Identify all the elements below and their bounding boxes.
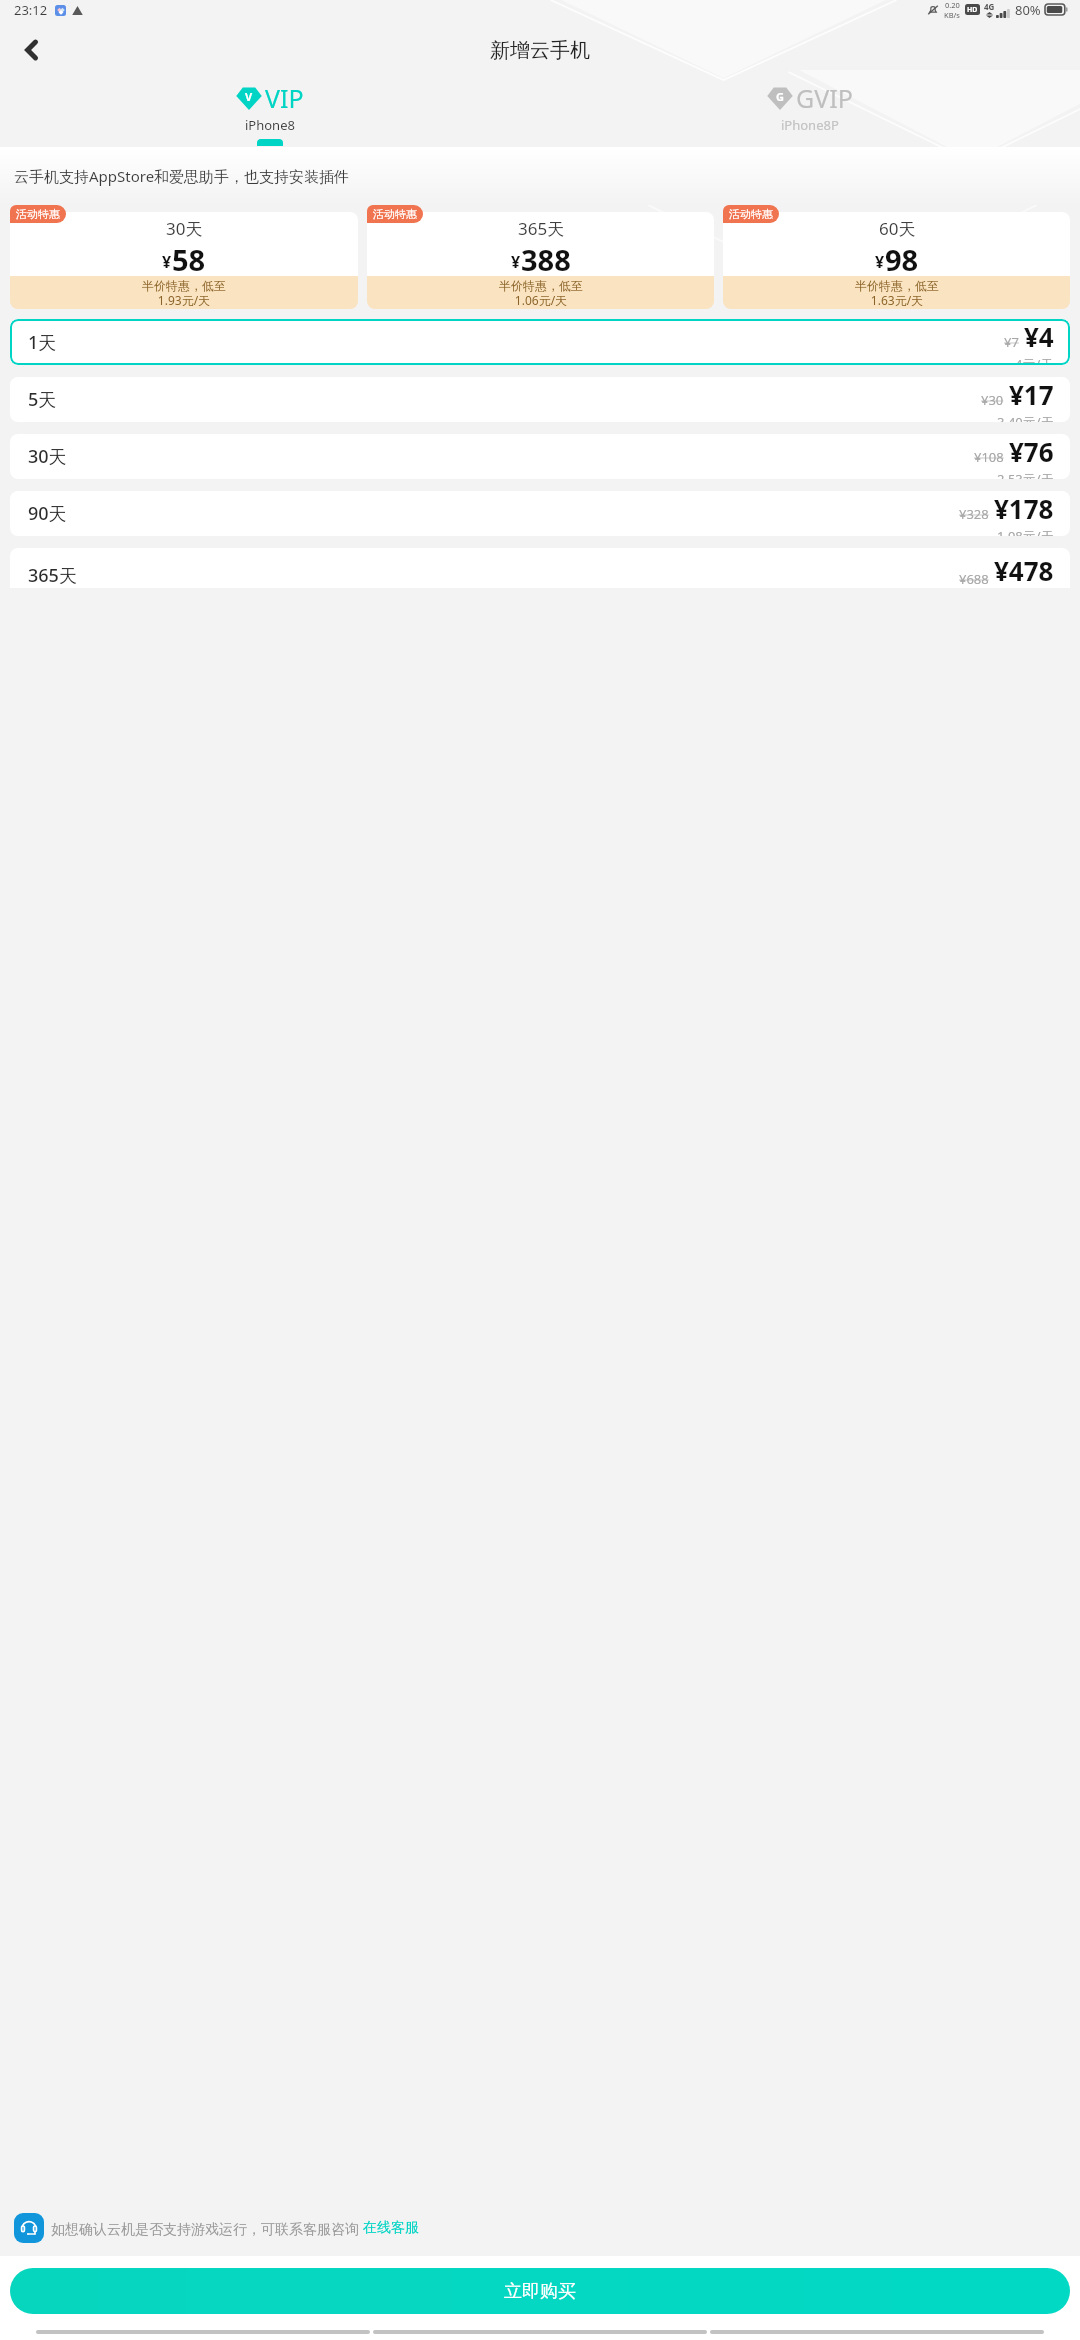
staticText: 30天 bbox=[28, 444, 67, 469]
staticText: G bbox=[776, 89, 784, 104]
button[interactable]: G bbox=[540, 81, 1080, 147]
staticText: 60天 bbox=[879, 217, 916, 240]
staticText: 365天 bbox=[518, 217, 565, 240]
staticText: ¥17 bbox=[1009, 377, 1054, 412]
staticText: 5天 bbox=[28, 387, 57, 412]
staticText: 云手机支持AppStore和爱思助手，也支持安装插件 bbox=[14, 166, 350, 186]
staticText: ¥ bbox=[511, 251, 521, 273]
button[interactable]: 5天 bbox=[10, 377, 1070, 422]
staticText: 80% bbox=[1015, 1, 1041, 19]
staticText: ¥76 bbox=[1009, 434, 1054, 469]
staticText: 365天 bbox=[28, 563, 77, 588]
button[interactable]: 365天 bbox=[10, 548, 1070, 588]
staticText: 如想确认云机是否支持游戏运行，可联系客服咨询 bbox=[51, 2219, 363, 2238]
staticText: 0.20 bbox=[945, 0, 960, 10]
staticText: 388 bbox=[521, 240, 571, 276]
staticText: ¥478 bbox=[994, 553, 1054, 588]
staticText: 1天 bbox=[28, 330, 57, 355]
staticText: ¥108 bbox=[974, 448, 1004, 466]
staticText: 90天 bbox=[28, 501, 67, 526]
staticText: ¥688 bbox=[959, 570, 989, 588]
staticText: 98 bbox=[885, 240, 919, 276]
button[interactable]: V bbox=[0, 81, 540, 147]
staticText: 1.98元/天 bbox=[997, 527, 1054, 536]
button[interactable]: 1天 bbox=[10, 319, 1070, 365]
staticText: 半价特惠，低至 1.63元/天 bbox=[855, 278, 939, 308]
staticText: 58 bbox=[172, 240, 206, 276]
staticText: iPhone8 bbox=[245, 116, 295, 134]
staticText: 在线客服 bbox=[363, 2219, 419, 2237]
staticText: 半价特惠，低至 1.06元/天 bbox=[499, 278, 583, 308]
button[interactable]: 60天 bbox=[723, 205, 1070, 309]
staticText: 活动特惠 bbox=[729, 207, 773, 221]
button[interactable]: 立即购买 bbox=[10, 2268, 1070, 2314]
staticText: 半价特惠，低至 1.93元/天 bbox=[142, 278, 226, 308]
staticText: 4元/天 bbox=[1015, 355, 1054, 365]
staticText: ¥7 bbox=[1004, 333, 1019, 351]
staticText: ¥178 bbox=[994, 491, 1054, 526]
staticText: ¥30 bbox=[981, 391, 1004, 409]
staticText: iPhone8P bbox=[781, 116, 839, 134]
staticText: ¥ bbox=[162, 251, 172, 273]
staticText: 4G bbox=[984, 1, 995, 12]
staticText: V bbox=[245, 89, 253, 104]
staticText: 30天 bbox=[166, 217, 203, 240]
staticText: ¥4 bbox=[1024, 319, 1054, 354]
staticText: KB/s bbox=[944, 10, 960, 19]
staticText: ¥328 bbox=[959, 505, 989, 523]
button[interactable]: 如想确认云机是否支持游戏运行，可联系客服咨询 bbox=[14, 2200, 1068, 2256]
staticText: GVIP bbox=[796, 81, 853, 115]
staticText: 新增云手机 bbox=[490, 38, 590, 63]
staticText: 活动特惠 bbox=[16, 207, 60, 221]
staticText: 23:12 bbox=[14, 1, 48, 19]
button[interactable]: 365天 bbox=[367, 205, 714, 309]
staticText: 3.40元/天 bbox=[997, 413, 1054, 422]
staticText: VIP bbox=[265, 81, 304, 115]
button[interactable]: 30天 bbox=[10, 205, 358, 309]
staticText: HD bbox=[967, 5, 978, 15]
staticText: 2.53元/天 bbox=[997, 470, 1054, 479]
staticText: 立即购买 bbox=[504, 2280, 576, 2303]
staticText: 活动特惠 bbox=[373, 207, 417, 221]
staticText: ¥ bbox=[875, 251, 885, 273]
button[interactable]: 90天 bbox=[10, 491, 1070, 536]
button[interactable]: Back bbox=[4, 22, 60, 78]
button[interactable]: 30天 bbox=[10, 434, 1070, 479]
